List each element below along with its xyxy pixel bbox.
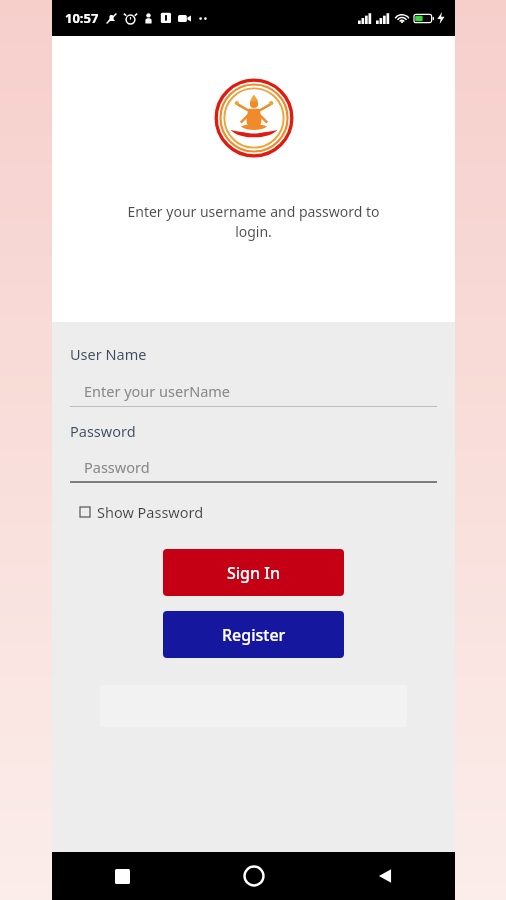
staticText: Register: [222, 624, 286, 646]
button[interactable]: Enter your userName: [70, 376, 437, 406]
button[interactable]: Register: [163, 611, 344, 658]
staticText: 10:57: [65, 9, 99, 27]
button[interactable]: Sign In: [163, 549, 344, 596]
staticText: User Name: [70, 344, 147, 364]
button[interactable]: Back: [363, 854, 407, 898]
button[interactable]: Password: [70, 453, 437, 481]
staticText: Enter your username and password to logi…: [112, 202, 395, 242]
staticText: Show Password: [97, 502, 204, 522]
staticText: Sign In: [227, 562, 280, 584]
staticText: Password: [84, 457, 150, 477]
button[interactable]: Recent apps: [100, 854, 144, 898]
button[interactable]: Home: [232, 854, 276, 898]
staticText: Enter your userName: [84, 381, 231, 401]
button[interactable]: Show Password: [78, 499, 206, 525]
staticText: Password: [70, 421, 136, 441]
